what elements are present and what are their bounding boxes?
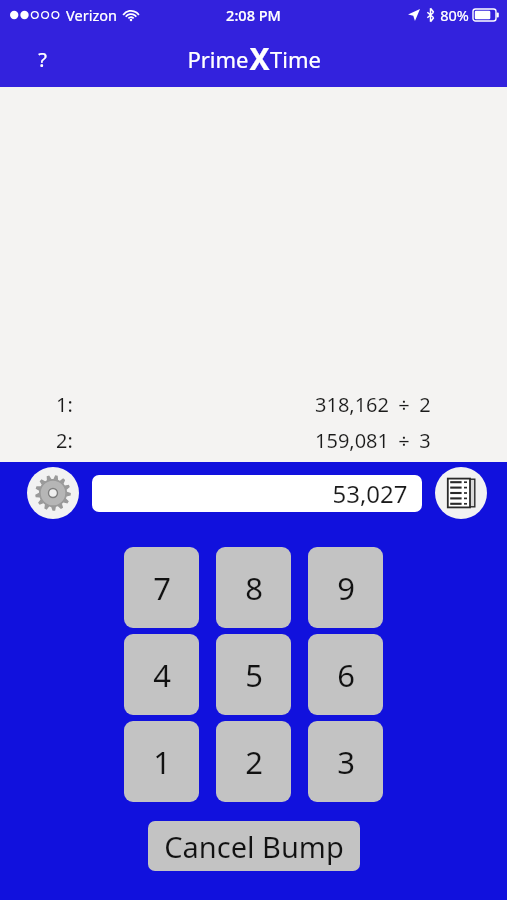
button[interactable]: Cancel Bump (148, 821, 360, 871)
staticText: 2 (245, 741, 263, 783)
button[interactable]: 7 (124, 547, 199, 628)
button[interactable]: 2: (0, 422, 507, 458)
staticText: 80% (440, 5, 469, 25)
staticText: 2: (56, 427, 73, 454)
staticText: 4 (153, 654, 171, 696)
staticText: 53,027 (332, 477, 408, 510)
button[interactable]: Help (22, 39, 62, 79)
button[interactable]: 1: (0, 386, 507, 422)
staticText: 3 (419, 427, 431, 454)
staticText: 8 (245, 567, 263, 609)
staticText: 7 (153, 567, 171, 609)
staticText: Prime (187, 44, 249, 74)
staticText: X (249, 38, 270, 79)
staticText: Time (270, 44, 321, 74)
button[interactable]: Settings (27, 467, 79, 519)
button[interactable]: 53,027 (92, 475, 422, 512)
staticText: Cancel Bump (164, 827, 344, 866)
button[interactable]: History (435, 467, 487, 519)
button[interactable]: 9 (308, 547, 383, 628)
button[interactable]: 6 (308, 634, 383, 715)
button[interactable]: 2 (216, 721, 291, 802)
staticText: 9 (337, 567, 355, 609)
staticText: 3 (337, 741, 355, 783)
staticText: 318,162 (315, 391, 389, 418)
staticText: 5 (245, 654, 263, 696)
staticText: 2:08 PM (226, 5, 281, 25)
staticText: ÷ (398, 391, 410, 418)
staticText: 2 (419, 391, 431, 418)
button[interactable]: 8 (216, 547, 291, 628)
button[interactable]: 4 (124, 634, 199, 715)
staticText: ? (38, 46, 47, 73)
staticText: 159,081 (315, 427, 389, 454)
staticText: 6 (337, 654, 355, 696)
staticText: 1: (56, 391, 73, 418)
staticText: ÷ (398, 427, 410, 454)
button[interactable]: 1 (124, 721, 199, 802)
staticText: 1 (153, 741, 171, 783)
button[interactable]: 5 (216, 634, 291, 715)
staticText: Verizon (66, 5, 117, 25)
button[interactable]: 3 (308, 721, 383, 802)
